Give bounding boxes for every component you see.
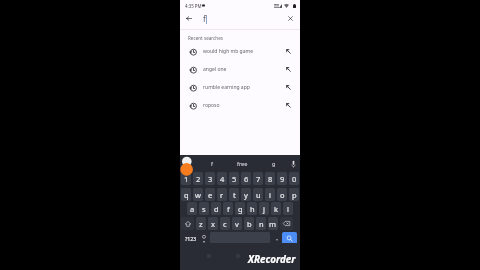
staticText: v	[235, 219, 239, 229]
staticText: 6	[244, 174, 249, 184]
staticText: 8	[268, 174, 273, 184]
button[interactable]: 7	[253, 172, 263, 185]
staticText: w	[195, 190, 201, 200]
staticText: n	[259, 219, 264, 229]
staticText: 4:35 PM	[185, 3, 202, 9]
button[interactable]: h	[247, 202, 257, 215]
button[interactable]: Insert query	[282, 81, 294, 93]
button[interactable]: j	[259, 202, 269, 215]
staticText: f	[203, 13, 206, 24]
button[interactable]: g	[235, 202, 245, 215]
button[interactable]: 8	[265, 172, 275, 185]
button[interactable]: Emoji	[199, 232, 209, 245]
button[interactable]: 6	[241, 172, 251, 185]
staticText: Recent searches	[188, 35, 223, 41]
staticText: b	[247, 219, 252, 229]
button[interactable]: t	[229, 188, 239, 201]
button[interactable]: Insert query	[282, 99, 294, 111]
staticText: free	[237, 160, 248, 168]
staticText: y	[244, 190, 248, 200]
button[interactable]: s	[199, 202, 209, 215]
button[interactable]: d	[211, 202, 221, 215]
button[interactable]: u	[253, 188, 263, 201]
button[interactable]: 9	[277, 172, 287, 185]
button[interactable]: 5	[229, 172, 239, 185]
button[interactable]: Space	[210, 232, 270, 244]
button[interactable]: would high mb game	[180, 42, 300, 60]
staticText: 3	[208, 174, 213, 184]
staticText: e	[208, 190, 213, 200]
button[interactable]: o	[277, 188, 287, 201]
button[interactable]: z	[196, 217, 206, 230]
button[interactable]: roposo	[180, 96, 300, 114]
button[interactable]: 3	[205, 172, 215, 185]
staticText: 7	[256, 174, 261, 184]
staticText: h	[250, 204, 255, 214]
button[interactable]: w	[193, 188, 203, 201]
staticText: f	[227, 204, 230, 214]
button[interactable]: rumble earning app	[180, 78, 300, 96]
button[interactable]: a	[187, 202, 197, 215]
staticText: c	[223, 219, 227, 229]
button[interactable]: v	[232, 217, 242, 230]
staticText: j	[263, 204, 265, 214]
button[interactable]: Period	[272, 232, 281, 245]
button[interactable]: Clear search	[284, 12, 297, 25]
staticText: p	[292, 190, 297, 200]
staticText: angel one	[203, 66, 227, 73]
button[interactable]: Search	[282, 232, 297, 245]
staticText: g	[238, 204, 243, 214]
staticText: roposo	[203, 102, 220, 109]
staticText: z	[199, 219, 203, 229]
button[interactable]: angel one	[180, 60, 300, 78]
button[interactable]: n	[256, 217, 266, 230]
button[interactable]: l	[283, 202, 293, 215]
staticText: m	[269, 219, 277, 229]
staticText: i	[269, 190, 271, 200]
button[interactable]: f	[223, 202, 233, 215]
button[interactable]: Insert query	[282, 63, 294, 75]
button[interactable]: 0	[289, 172, 299, 185]
staticText: f	[211, 160, 213, 168]
staticText: s	[202, 204, 206, 214]
staticText: g	[272, 160, 276, 168]
button[interactable]: e	[205, 188, 215, 201]
button[interactable]: i	[265, 188, 275, 201]
staticText: k	[274, 204, 279, 214]
staticText: would high mb game	[203, 48, 253, 55]
button[interactable]: Voice input	[287, 158, 299, 170]
button[interactable]: c	[220, 217, 230, 230]
staticText: a	[190, 204, 195, 214]
staticText: XRecorder	[248, 253, 296, 266]
button[interactable]: r	[217, 188, 227, 201]
staticText: l	[287, 204, 289, 214]
button[interactable]: q	[181, 188, 191, 201]
staticText: d	[214, 204, 219, 214]
button[interactable]: m	[268, 217, 278, 230]
button[interactable]: y	[241, 188, 251, 201]
button[interactable]: 2	[193, 172, 203, 185]
staticText: 1	[184, 174, 189, 184]
staticText: 5	[232, 174, 237, 184]
button[interactable]: k	[271, 202, 281, 215]
button[interactable]: Insert query	[282, 45, 294, 57]
button[interactable]: b	[244, 217, 254, 230]
button[interactable]: x	[208, 217, 218, 230]
button[interactable]: 4	[217, 172, 227, 185]
button[interactable]: Shift	[181, 217, 194, 230]
staticText: 0	[292, 174, 297, 184]
button[interactable]: 1	[181, 172, 191, 185]
staticText: 9	[280, 174, 285, 184]
button[interactable]: Back	[182, 12, 195, 25]
staticText: 2	[196, 174, 201, 184]
button[interactable]: free	[227, 155, 258, 172]
staticText: rumble earning app	[203, 84, 250, 91]
button[interactable]: Backspace	[280, 217, 293, 230]
button[interactable]: g	[258, 155, 289, 172]
staticText: o	[280, 190, 285, 200]
button[interactable]: Symbols	[180, 232, 202, 245]
staticText: x	[211, 219, 215, 229]
staticText: ?123	[185, 235, 197, 242]
button[interactable]: p	[289, 188, 299, 201]
button[interactable]: f	[196, 155, 227, 172]
